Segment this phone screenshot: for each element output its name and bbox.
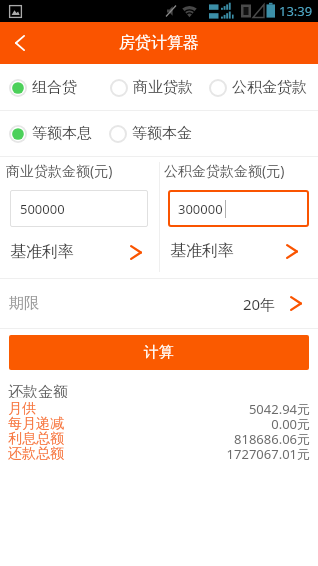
staticText: 商业贷款 — [133, 78, 193, 97]
staticText: 月供 — [8, 400, 36, 415]
staticText: 818686.06元 — [234, 430, 310, 445]
staticText: 房贷计算器 — [119, 33, 199, 53]
button[interactable]: 商业贷款 — [110, 78, 193, 97]
staticText: 还款总额 — [8, 445, 64, 460]
button[interactable]: 计算 — [9, 335, 309, 370]
staticText: 20年 — [243, 294, 276, 314]
staticText: 公积金贷款 — [232, 78, 307, 97]
staticText: 300000 — [178, 200, 223, 218]
button[interactable]: 基准利率 — [10, 238, 142, 266]
button[interactable]: 等额本息 — [9, 124, 92, 143]
staticText: 计算 — [144, 343, 174, 362]
staticText: 期限 — [9, 294, 39, 313]
staticText: 基准利率 — [10, 242, 74, 262]
button[interactable]: 300000 — [168, 190, 309, 227]
staticText: 公积金贷款金额(元) — [164, 161, 285, 180]
button[interactable]: 公积金贷款 — [209, 78, 307, 97]
staticText: 利息总额 — [8, 430, 64, 445]
staticText: 等额本金 — [132, 124, 192, 143]
staticText: 还款金额 — [8, 383, 68, 398]
button[interactable]: 组合贷 — [9, 78, 77, 97]
button[interactable]: 基准利率 — [170, 237, 298, 265]
staticText: 商业贷款金额(元) — [6, 161, 113, 180]
staticText: 每月递减 — [8, 415, 64, 430]
button[interactable]: Back — [7, 30, 33, 56]
staticText: 组合贷 — [32, 78, 77, 97]
staticText: 500000 — [20, 200, 65, 218]
button[interactable]: 等额本金 — [109, 124, 192, 143]
staticText: 1727067.01元 — [226, 445, 310, 460]
staticText: 13:39 — [279, 2, 313, 20]
button[interactable]: 500000 — [10, 190, 148, 227]
staticText: 0.00元 — [271, 415, 310, 430]
staticText: 基准利率 — [170, 241, 234, 261]
staticText: 5042.94元 — [248, 400, 310, 415]
staticText: 等额本息 — [32, 124, 92, 143]
button[interactable]: 期限 — [9, 279, 302, 328]
